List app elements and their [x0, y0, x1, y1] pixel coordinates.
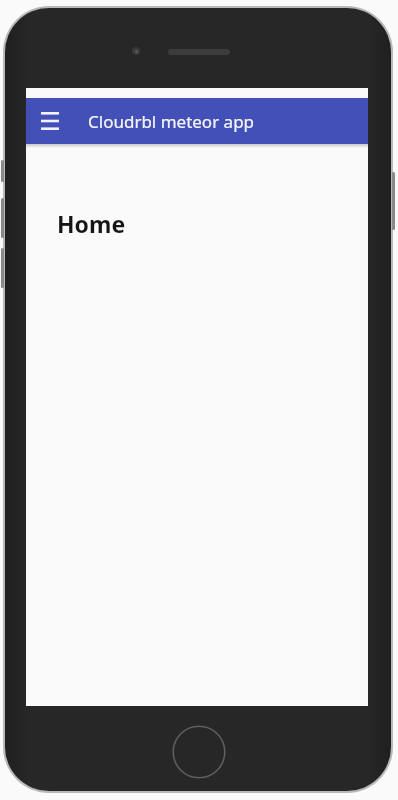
staticText: Cloudrbl meteor app — [88, 110, 255, 133]
staticText: Home — [57, 208, 126, 239]
button[interactable]: Open navigation menu — [34, 105, 66, 137]
